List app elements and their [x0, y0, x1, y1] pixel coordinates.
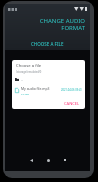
staticText: CHOOSE A FILE: [31, 41, 64, 47]
staticText: Choose a file: [16, 63, 42, 69]
button[interactable]: Recents: [60, 155, 70, 165]
button[interactable]: Back: [26, 155, 36, 165]
button[interactable]: CHOOSE A FILE: [5, 39, 90, 48]
staticText: CHANGE AUDIO FORMAT: [5, 17, 85, 31]
button[interactable]: CANCEL: [59, 98, 85, 109]
staticText: /storage/emulated/0: [16, 70, 42, 74]
button[interactable]: Home: [43, 155, 53, 165]
button[interactable]: ..: [12, 75, 85, 84]
staticText: 3.3 MB: [21, 92, 29, 95]
staticText: 2021-04-06 09:41: [61, 88, 82, 92]
staticText: My audio file.mp3: [21, 86, 50, 91]
staticText: CANCEL: [64, 101, 80, 106]
button[interactable]: My audio file.mp3: [12, 85, 85, 96]
staticText: ..: [21, 77, 24, 82]
